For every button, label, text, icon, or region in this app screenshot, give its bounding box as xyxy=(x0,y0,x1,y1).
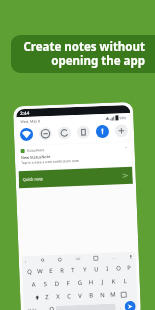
button[interactable]: Quick setting toggle xyxy=(115,124,128,137)
staticText: 2:44 xyxy=(20,110,29,116)
button[interactable]: N xyxy=(97,288,107,301)
button[interactable]: F xyxy=(63,276,74,290)
staticText: Q xyxy=(27,268,32,276)
staticText: ⌄ xyxy=(124,144,129,149)
staticText: R xyxy=(60,266,64,275)
button[interactable]: Y xyxy=(80,262,90,276)
staticText: ‹ xyxy=(25,259,27,264)
staticText: Wed, May 8 xyxy=(20,118,41,124)
button[interactable]: Quick setting toggle xyxy=(20,128,33,141)
staticText: H xyxy=(89,278,94,287)
staticText: P xyxy=(127,264,131,272)
staticText: X xyxy=(56,293,60,301)
button[interactable]: Quick setting toggle xyxy=(58,126,71,140)
button[interactable]: Quick setting toggle xyxy=(96,125,109,138)
button[interactable]: Quick setting toggle xyxy=(77,125,90,139)
button[interactable]: Create notes without opening the app xyxy=(11,35,155,73)
staticText: F xyxy=(67,279,71,287)
staticText: Y xyxy=(83,266,87,274)
staticText: Z xyxy=(45,293,49,301)
staticText: U xyxy=(94,265,99,273)
button[interactable]: Quick setting toggle xyxy=(39,127,52,140)
button[interactable]: J xyxy=(97,275,108,288)
button[interactable]: L xyxy=(120,274,131,287)
staticText: W xyxy=(37,267,43,275)
staticText: O xyxy=(116,264,121,272)
staticText: V xyxy=(78,292,82,300)
button[interactable]: . xyxy=(115,300,125,310)
staticText: C xyxy=(67,292,71,300)
staticText: ⋯ xyxy=(112,255,116,261)
button[interactable]: S xyxy=(40,277,51,290)
button[interactable]: V xyxy=(75,289,85,302)
staticText: GIF xyxy=(76,257,81,261)
button[interactable]: I xyxy=(102,262,112,275)
button[interactable]: ?123 xyxy=(25,304,38,310)
staticText: I xyxy=(106,265,109,273)
staticText: ?123 xyxy=(28,308,37,310)
staticText: K xyxy=(112,278,116,286)
staticText: N xyxy=(100,291,105,299)
other: Voice input xyxy=(129,255,133,259)
button[interactable]: Q xyxy=(24,265,34,278)
button[interactable]: A xyxy=(28,277,39,291)
button[interactable]: M xyxy=(108,287,118,301)
button[interactable]: Backspace xyxy=(119,290,127,298)
staticText: D xyxy=(55,280,60,288)
button[interactable]: H xyxy=(85,275,96,289)
button[interactable]: K xyxy=(108,274,119,288)
staticText: B xyxy=(89,291,93,299)
staticText: G xyxy=(78,279,83,287)
staticText: A xyxy=(32,281,36,289)
button[interactable]: X xyxy=(53,290,63,303)
button[interactable]: T xyxy=(68,263,78,276)
staticText: E xyxy=(49,267,53,275)
button[interactable]: Z xyxy=(42,290,52,303)
button[interactable]: U xyxy=(91,262,101,275)
staticText: L xyxy=(124,277,128,285)
button[interactable]: B xyxy=(86,288,96,302)
button[interactable]: O xyxy=(113,261,123,275)
button[interactable]: C xyxy=(64,289,74,303)
button[interactable]: StatusNote xyxy=(17,142,132,170)
button[interactable]: Shift xyxy=(33,293,41,302)
button[interactable]: D xyxy=(51,277,62,290)
staticText: J xyxy=(102,278,104,286)
other: Search xyxy=(41,258,45,262)
button[interactable]: E xyxy=(46,264,56,277)
staticText: New StatusNote xyxy=(21,154,51,160)
button[interactable]: P xyxy=(124,261,134,274)
staticText: S xyxy=(44,280,48,288)
staticText: Quick note xyxy=(23,176,44,182)
button[interactable]: R xyxy=(57,263,67,277)
staticText: StatusNote xyxy=(26,147,45,153)
button[interactable]: Quick note xyxy=(18,167,133,188)
button[interactable]: Send xyxy=(124,301,136,310)
staticText: Tap to create a new notification note xyxy=(21,158,79,165)
button[interactable]: Space xyxy=(56,304,116,310)
button[interactable]: W xyxy=(35,264,45,278)
staticText: 98% xyxy=(119,115,126,120)
staticText: M xyxy=(110,291,116,299)
staticText: . xyxy=(120,303,122,310)
button[interactable]: Emoji xyxy=(46,303,56,310)
staticText: T xyxy=(71,266,75,274)
staticText: Create notes without opening the app xyxy=(11,39,145,69)
button[interactable]: G xyxy=(74,276,85,289)
